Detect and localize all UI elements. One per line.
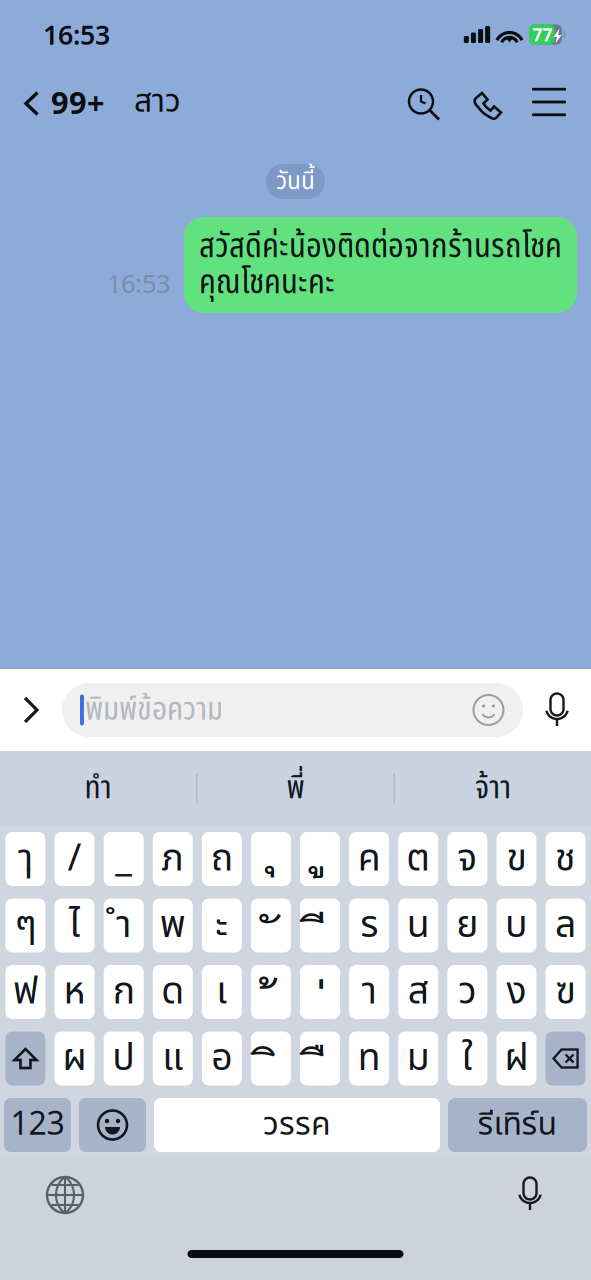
button[interactable]: / xyxy=(54,832,94,886)
staticText: _ xyxy=(115,831,132,887)
staticText: 16:53 xyxy=(43,17,110,52)
button[interactable]: ง xyxy=(496,965,536,1019)
button[interactable]: ท xyxy=(349,1031,389,1085)
button[interactable]: ป xyxy=(104,1031,144,1085)
button[interactable]: ใ xyxy=(447,1031,487,1085)
button[interactable]: _ xyxy=(104,832,144,886)
button[interactable]: ี xyxy=(300,898,340,952)
button[interactable]: ผ xyxy=(54,1031,94,1085)
button[interactable]: ๅ xyxy=(5,832,45,886)
staticText: ้ xyxy=(265,968,277,1027)
staticText: ค xyxy=(358,831,381,887)
staticText: สาว xyxy=(134,78,181,126)
button[interactable]: ช xyxy=(546,832,586,886)
button[interactable]: ำ xyxy=(104,898,144,952)
button[interactable]: พี่ xyxy=(197,751,394,826)
button[interactable]: ม xyxy=(398,1031,438,1085)
button[interactable]: ้ xyxy=(251,965,291,1019)
button[interactable]: Call xyxy=(453,73,517,131)
staticText: ั xyxy=(265,902,277,961)
staticText: ห xyxy=(63,964,85,1020)
button[interactable]: 123 xyxy=(4,1098,71,1152)
button[interactable]: ไ xyxy=(54,898,94,952)
button[interactable]: Dictate xyxy=(505,1175,591,1215)
button[interactable]: ะ xyxy=(202,898,242,952)
staticText: / xyxy=(67,831,81,887)
staticText: ฃ xyxy=(556,964,576,1020)
button[interactable]: ด xyxy=(153,965,193,1019)
staticText: ง xyxy=(506,964,526,1020)
button[interactable]: ฟ xyxy=(5,965,45,1019)
button[interactable]: ย xyxy=(447,898,487,952)
button[interactable]: ๆ xyxy=(5,898,45,952)
staticText: 123 xyxy=(10,1101,64,1149)
staticText: 99+ xyxy=(51,82,105,122)
button[interactable]: ทำ xyxy=(0,751,196,826)
button[interactable]: ื xyxy=(300,1031,340,1085)
staticText: ำ xyxy=(116,897,131,954)
button[interactable]: สาว xyxy=(113,73,191,131)
button[interactable]: ู xyxy=(300,832,340,886)
staticText: อ xyxy=(211,1030,232,1087)
button[interactable]: Delete xyxy=(546,1031,586,1085)
button[interactable]: ร xyxy=(349,898,389,952)
button[interactable]: Emoji xyxy=(79,1098,146,1152)
staticText: 16:53 xyxy=(107,266,170,300)
staticText: ื xyxy=(314,1035,326,1094)
button[interactable]: พิมพ์ข้อความ xyxy=(62,683,523,737)
button[interactable]: ห xyxy=(54,965,94,1019)
button[interactable]: ฃ xyxy=(546,965,586,1019)
button[interactable]: ิ xyxy=(251,1031,291,1085)
button[interactable]: Voice message xyxy=(523,669,591,751)
staticText: ู xyxy=(314,814,326,873)
button[interactable]: พ xyxy=(153,898,193,952)
button[interactable]: บ xyxy=(496,898,536,952)
staticText: ๅ xyxy=(18,831,33,887)
staticText: ผ xyxy=(62,1030,86,1087)
button[interactable]: ค xyxy=(349,832,389,886)
button[interactable]: ่ xyxy=(300,965,340,1019)
staticText: ะ xyxy=(215,897,228,954)
staticText: 77 xyxy=(532,23,552,46)
button[interactable]: Search xyxy=(389,73,453,131)
button[interactable]: า xyxy=(349,965,389,1019)
button[interactable]: ก xyxy=(104,965,144,1019)
staticText: ฟ xyxy=(13,964,38,1020)
staticText: ก xyxy=(113,964,135,1020)
button[interactable]: ข xyxy=(496,832,536,886)
button[interactable]: Menu xyxy=(517,73,581,131)
staticText: ถ xyxy=(211,831,233,887)
button[interactable]: Open menu xyxy=(0,669,62,751)
staticText: ทำ xyxy=(85,764,112,813)
button[interactable]: เ xyxy=(202,965,242,1019)
staticText: วรรค xyxy=(263,1101,331,1149)
button[interactable]: แ xyxy=(153,1031,193,1085)
staticText: า xyxy=(362,964,377,1020)
button[interactable]: ต xyxy=(398,832,438,886)
button[interactable]: ส xyxy=(398,965,438,1019)
staticText: ด xyxy=(161,964,184,1020)
button[interactable]: ล xyxy=(546,898,586,952)
button[interactable]: วรรค xyxy=(154,1098,440,1152)
staticText: ต xyxy=(406,831,430,887)
button[interactable]: ั xyxy=(251,898,291,952)
staticText: แ xyxy=(162,1030,183,1087)
button[interactable]: รีเทิร์น xyxy=(448,1098,587,1152)
button[interactable]: จ xyxy=(447,832,487,886)
button[interactable]: ุ xyxy=(251,832,291,886)
button[interactable]: ถ xyxy=(202,832,242,886)
button[interactable]: ฝ xyxy=(496,1031,536,1085)
staticText: จ้าา xyxy=(475,764,511,813)
staticText: ่ xyxy=(314,968,326,1027)
button[interactable]: Next keyboard xyxy=(0,1174,98,1216)
staticText: ท xyxy=(358,1030,381,1087)
staticText: จ xyxy=(457,831,477,887)
button[interactable]: น xyxy=(398,898,438,952)
button[interactable]: Shift xyxy=(5,1031,45,1085)
button[interactable]: 99+ xyxy=(0,73,113,131)
button[interactable]: ว xyxy=(447,965,487,1019)
staticText: ี xyxy=(314,902,326,961)
button[interactable]: ภ xyxy=(153,832,193,886)
button[interactable]: จ้าา xyxy=(395,751,591,826)
button[interactable]: อ xyxy=(202,1031,242,1085)
